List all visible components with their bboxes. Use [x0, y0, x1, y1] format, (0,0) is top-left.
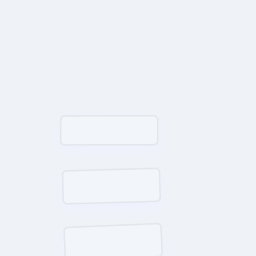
button[interactable]: Item 1 — [61, 116, 158, 145]
button[interactable]: Item 2 — [63, 170, 160, 203]
